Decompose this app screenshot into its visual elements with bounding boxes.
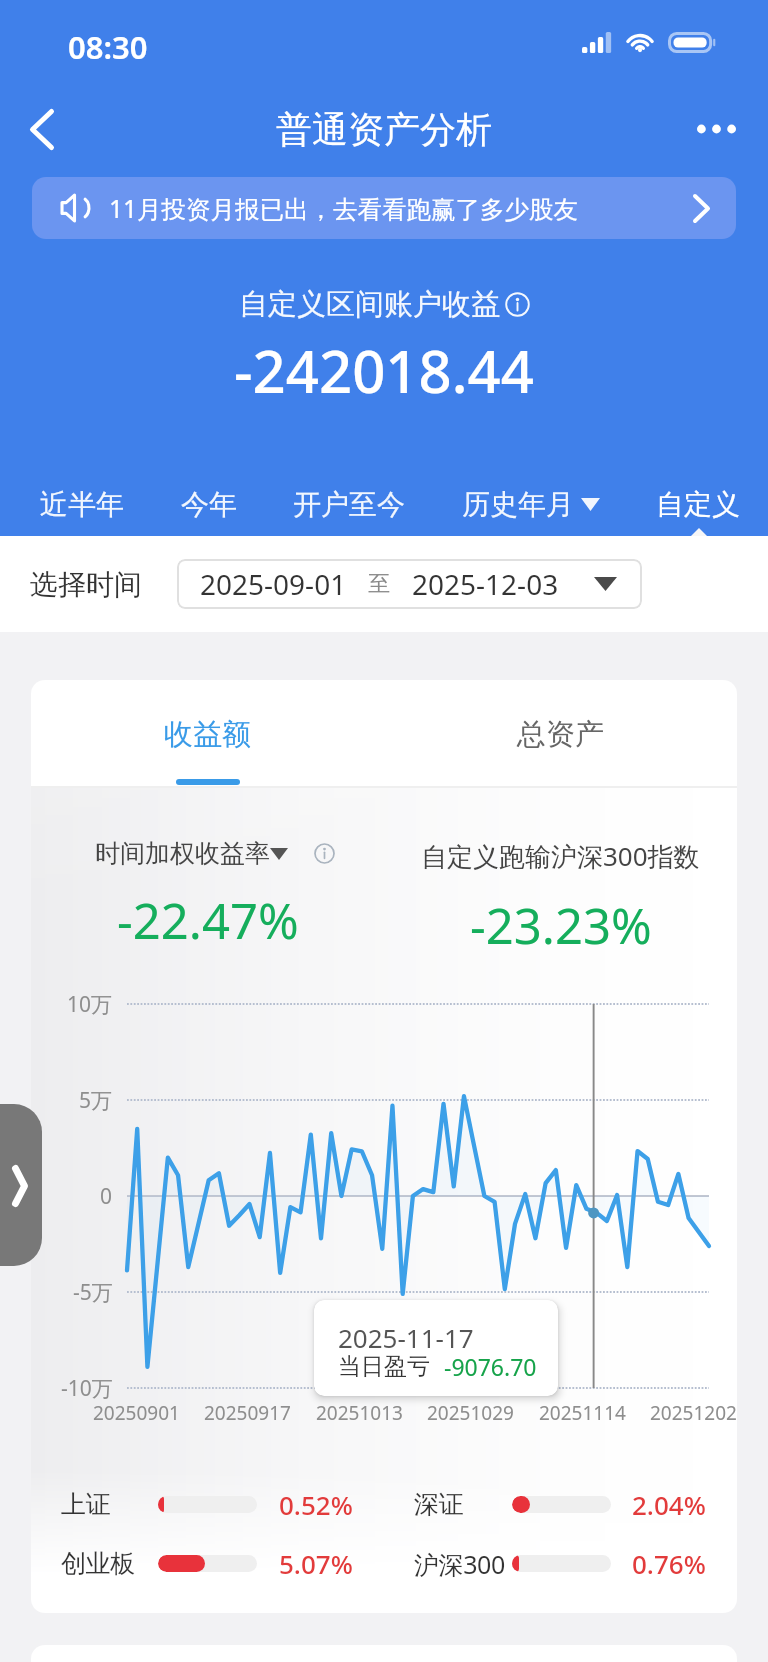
staticText: 上证 — [61, 1489, 111, 1520]
staticText: 0.76% — [632, 1546, 706, 1581]
staticText: 2025-11-17 — [338, 1320, 474, 1355]
staticText: 20251029 — [427, 1400, 514, 1426]
button[interactable]: 近半年 — [34, 477, 130, 532]
staticText: 20251114 — [539, 1400, 626, 1426]
staticText: 08:30 — [68, 26, 148, 68]
button[interactable]: 自定义 — [650, 477, 746, 532]
button[interactable]: 上证 — [31, 1475, 384, 1534]
staticText: 11月投资月报已出，去看看跑赢了多少股友 — [109, 192, 693, 225]
staticText: 历史年月 — [462, 487, 574, 522]
staticText: 时间加权收益率 — [95, 838, 270, 869]
button[interactable]: Back — [14, 101, 70, 157]
staticText: 2.04% — [632, 1487, 706, 1522]
button[interactable]: 开户至今 — [287, 477, 411, 532]
staticText: 当日盈亏 — [338, 1352, 430, 1381]
button[interactable]: Expand side panel — [0, 1104, 42, 1266]
staticText: 2025-09-01 — [200, 565, 347, 603]
staticText: -5万 — [73, 1278, 113, 1307]
staticText: 20251013 — [316, 1400, 403, 1426]
button[interactable]: 历史年月 — [456, 477, 606, 532]
staticText: 2025-12-03 — [412, 565, 559, 603]
staticText: 0 — [100, 1182, 113, 1211]
staticText: 20250901 — [93, 1400, 180, 1426]
staticText: 沪深300 — [414, 1547, 505, 1581]
button[interactable]: 深证 — [384, 1475, 737, 1534]
staticText: 5.07% — [279, 1546, 353, 1581]
staticText: 20251202 — [650, 1400, 737, 1426]
staticText: -10万 — [61, 1374, 113, 1403]
button[interactable]: 沪深300 — [384, 1534, 737, 1593]
staticText: 总资产 — [517, 716, 604, 753]
button[interactable]: 总资产 — [384, 680, 737, 786]
staticText: 近半年 — [40, 487, 124, 522]
staticText: -9076.70 — [444, 1351, 537, 1382]
button[interactable]: 今年 — [175, 477, 243, 532]
staticText: 今年 — [181, 487, 237, 522]
staticText: 收益额 — [164, 716, 251, 753]
staticText: 至 — [368, 570, 390, 598]
staticText: 自定义跑输沪深300指数 — [421, 838, 700, 874]
staticText: 创业板 — [61, 1548, 135, 1579]
button[interactable]: 创业板 — [31, 1534, 384, 1593]
button[interactable]: 11月投资月报已出，去看看跑赢了多少股友 — [32, 177, 736, 239]
staticText: 10万 — [67, 990, 113, 1019]
staticText: 0.52% — [279, 1487, 353, 1522]
staticText: -242018.44 — [234, 331, 534, 410]
staticText: -22.47% — [117, 887, 299, 954]
staticText: 20250917 — [204, 1400, 291, 1426]
staticText: 5万 — [79, 1086, 113, 1115]
button[interactable]: 2025-09-01 — [177, 559, 642, 609]
button[interactable]: 收益额 — [31, 680, 384, 786]
staticText: 自定义 — [656, 487, 740, 522]
staticText: 选择时间 — [30, 567, 142, 602]
staticText: 自定义区间账户收益 — [239, 286, 500, 323]
staticText: 普通资产分析 — [276, 107, 492, 152]
staticText: -23.23% — [470, 892, 652, 959]
staticText: 深证 — [414, 1489, 464, 1520]
button[interactable]: More options — [687, 100, 745, 158]
staticText: 开户至今 — [293, 487, 405, 522]
